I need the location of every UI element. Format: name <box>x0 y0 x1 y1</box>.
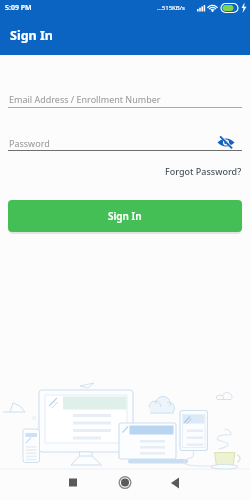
staticText: Sign In <box>10 27 53 44</box>
button[interactable]: Forgot Password? <box>165 165 242 177</box>
staticText: Password <box>9 137 50 149</box>
button[interactable]: Password <box>0 130 250 152</box>
staticText: Email Address / Enrollment Number <box>9 93 161 105</box>
staticText: Forgot Password? <box>165 165 242 177</box>
staticText: ...515KB/s <box>157 4 185 12</box>
button[interactable] <box>216 133 236 151</box>
button[interactable]: Sign In <box>8 200 242 232</box>
button[interactable] <box>152 470 202 498</box>
staticText: Sign In <box>108 209 142 223</box>
button[interactable] <box>100 470 150 498</box>
button[interactable]: Email Address / Enrollment Number <box>0 85 250 110</box>
button[interactable] <box>48 470 98 498</box>
staticText: 5:09 PM <box>5 3 32 13</box>
